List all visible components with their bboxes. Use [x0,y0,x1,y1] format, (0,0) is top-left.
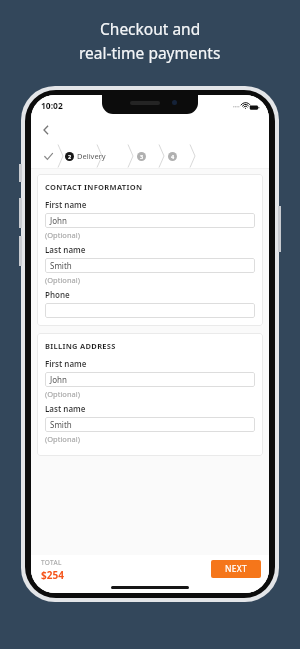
staticText: Last name [45,244,86,255]
button[interactable]: John [45,213,255,228]
staticText: 2 [68,153,72,160]
staticText: Last name [45,403,86,414]
staticText: (Optional) [45,275,80,285]
staticText: (Optional) [45,389,80,399]
staticText: John [50,215,67,226]
staticText: (Optional) [45,230,80,240]
staticText: First name [45,199,87,210]
button[interactable]: Step 1 complete [38,143,58,169]
staticText: 10:02 [41,100,63,112]
button[interactable] [45,303,255,318]
button[interactable]: 4 [165,143,179,169]
staticText: NEXT [225,563,248,575]
staticText: Phone [45,289,70,300]
button[interactable]: 2 [65,143,106,169]
button[interactable]: 3 [134,143,148,169]
staticText: John [50,374,67,385]
button[interactable]: John [45,372,255,387]
button[interactable]: Smith [45,417,255,432]
staticText: TOTAL [41,558,62,567]
staticText: BILLING ADDRESS [45,341,116,351]
staticText: Checkout and [100,18,201,39]
staticText: Delivery [77,151,106,161]
staticText: Smith [50,419,72,430]
staticText: CONTACT INFORMATION [45,182,143,192]
staticText: 3 [140,153,144,160]
staticText: First name [45,358,87,369]
staticText: $254 [41,568,64,582]
button[interactable]: Smith [45,258,255,273]
button[interactable]: NEXT [211,560,261,578]
staticText: real-time payments [79,42,221,63]
staticText: (Optional) [45,434,80,444]
staticText: 4 [171,153,175,160]
staticText: Smith [50,260,72,271]
button[interactable]: Back [35,119,57,141]
